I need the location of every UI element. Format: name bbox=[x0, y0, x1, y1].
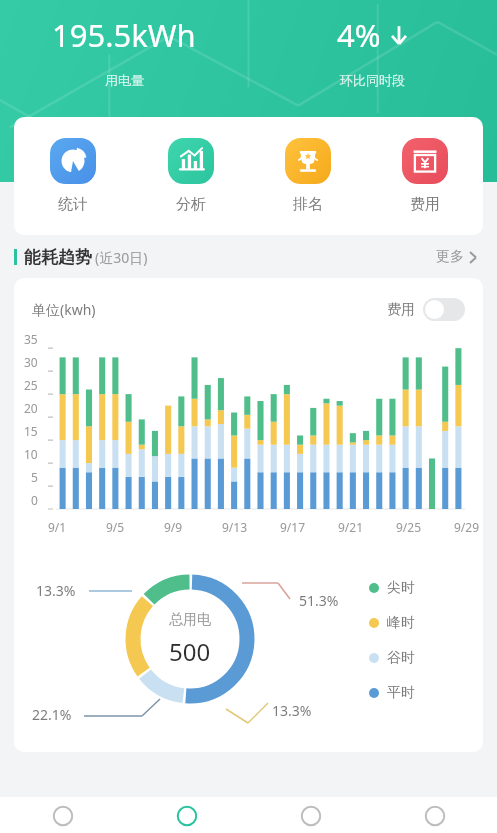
staticText: 9/5 bbox=[106, 519, 125, 535]
staticText: 4% bbox=[337, 14, 381, 56]
button[interactable]: 我的 bbox=[373, 797, 497, 833]
staticText: 统计 bbox=[58, 195, 88, 214]
button[interactable]: 首页 bbox=[0, 797, 125, 833]
staticText: 9/29 bbox=[454, 519, 480, 535]
staticText: 单位(kwh) bbox=[32, 300, 96, 319]
staticText: 谷时 bbox=[387, 649, 415, 667]
button[interactable]: 费用 bbox=[366, 117, 483, 235]
staticText: 排名 bbox=[293, 195, 323, 214]
staticText: 35 bbox=[24, 331, 38, 347]
button[interactable]: 消息 bbox=[249, 797, 373, 833]
staticText: 费用 bbox=[387, 301, 415, 319]
staticText: 更多 bbox=[436, 248, 464, 266]
staticText: 51.3% bbox=[299, 591, 339, 610]
staticText: 195.5kWh bbox=[52, 14, 196, 56]
button[interactable]: 费用 bbox=[387, 298, 465, 321]
button[interactable]: 排名 bbox=[249, 117, 366, 235]
button[interactable]: 数据 bbox=[125, 797, 249, 833]
staticText: 9/1 bbox=[48, 519, 67, 535]
staticText: 9/17 bbox=[280, 519, 306, 535]
staticText: 能耗趋势 bbox=[24, 247, 92, 268]
staticText: 环比同时段 bbox=[340, 72, 405, 88]
staticText: 9/21 bbox=[338, 519, 364, 535]
staticText: 25 bbox=[24, 377, 38, 393]
button[interactable]: 分析 bbox=[132, 117, 249, 235]
staticText: 总用电 bbox=[169, 611, 211, 629]
button[interactable]: 更多 bbox=[432, 244, 481, 270]
staticText: 费用 bbox=[410, 195, 440, 214]
staticText: 0 bbox=[31, 492, 38, 508]
staticText: 峰时 bbox=[387, 614, 415, 632]
staticText: 尖时 bbox=[387, 579, 415, 597]
staticText: (近30日) bbox=[95, 248, 148, 267]
staticText: 用电量 bbox=[105, 72, 144, 88]
staticText: 9/25 bbox=[396, 519, 422, 535]
staticText: 500 bbox=[169, 635, 211, 668]
staticText: 5 bbox=[31, 469, 38, 485]
staticText: 15 bbox=[24, 423, 38, 439]
staticText: 22.1% bbox=[32, 705, 72, 724]
staticText: 30 bbox=[24, 354, 38, 370]
button[interactable]: 统计 bbox=[14, 117, 132, 235]
staticText: 20 bbox=[24, 400, 38, 416]
staticText: 分析 bbox=[176, 195, 206, 214]
staticText: 10 bbox=[24, 446, 38, 462]
staticText: 9/13 bbox=[222, 519, 248, 535]
staticText: 平时 bbox=[387, 684, 415, 702]
staticText: 13.3% bbox=[36, 581, 76, 600]
staticText: 13.3% bbox=[272, 701, 312, 720]
staticText: 9/9 bbox=[164, 519, 183, 535]
